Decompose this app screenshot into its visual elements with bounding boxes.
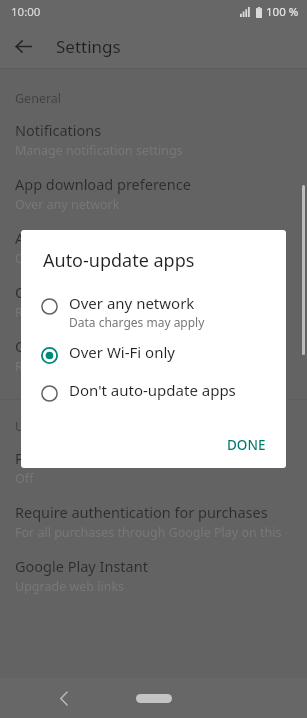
staticText: Settings [56, 35, 121, 58]
staticText: 100 % [266, 4, 299, 20]
button[interactable]: App download preference [0, 174, 307, 213]
staticText: Over Wi-Fi only [15, 250, 104, 267]
staticText: Off [15, 470, 34, 487]
staticText: Manage notification settings [15, 142, 183, 159]
staticText: Auto-update apps [43, 248, 195, 273]
button[interactable]: Notifications [0, 120, 307, 159]
staticText: Parental controls [15, 448, 131, 468]
staticText: Auto-update apps [15, 228, 137, 248]
button[interactable]: Google Play Protect [0, 336, 307, 375]
staticText: Notifications [15, 120, 102, 140]
staticText: Over any network [69, 293, 195, 313]
staticText: Over Wi-Fi only [69, 342, 175, 362]
staticText: 10:00 [11, 4, 41, 20]
staticText: Google Play Protect [15, 336, 149, 356]
button[interactable]: Require authentication for purchases [0, 502, 307, 541]
staticText: Over any network [15, 196, 120, 213]
button[interactable]: Don't auto-update apps [21, 380, 286, 404]
staticText: Data charges may apply [69, 314, 205, 330]
staticText: Upgrade web links [15, 578, 125, 595]
staticText: DONE [227, 436, 266, 454]
staticText: General [15, 90, 62, 107]
button[interactable]: Over any network [21, 293, 286, 330]
staticText: Remove the searches you have performed [15, 304, 263, 321]
staticText: Require authentication for purchases [15, 502, 268, 522]
button[interactable]: DONE [215, 428, 278, 462]
staticText: For all purchases through Google Play on… [15, 524, 295, 541]
staticText: App download preference [15, 174, 191, 194]
button[interactable]: Back [6, 29, 40, 63]
staticText: Google Play Instant [15, 556, 148, 576]
button[interactable]: Auto-update apps [0, 228, 307, 267]
staticText: Clear local search history [15, 282, 185, 302]
button[interactable]: Back [48, 682, 80, 714]
staticText: Regularly check apps and devices [15, 358, 211, 375]
button[interactable]: Clear local search history [0, 282, 307, 321]
staticText: User controls [15, 418, 94, 435]
button[interactable]: Over Wi-Fi only [21, 342, 286, 366]
button[interactable]: Home [136, 694, 172, 703]
staticText: Don't auto-update apps [69, 380, 236, 400]
button[interactable]: Parental controls [0, 448, 307, 487]
button[interactable]: Google Play Instant [0, 556, 307, 595]
